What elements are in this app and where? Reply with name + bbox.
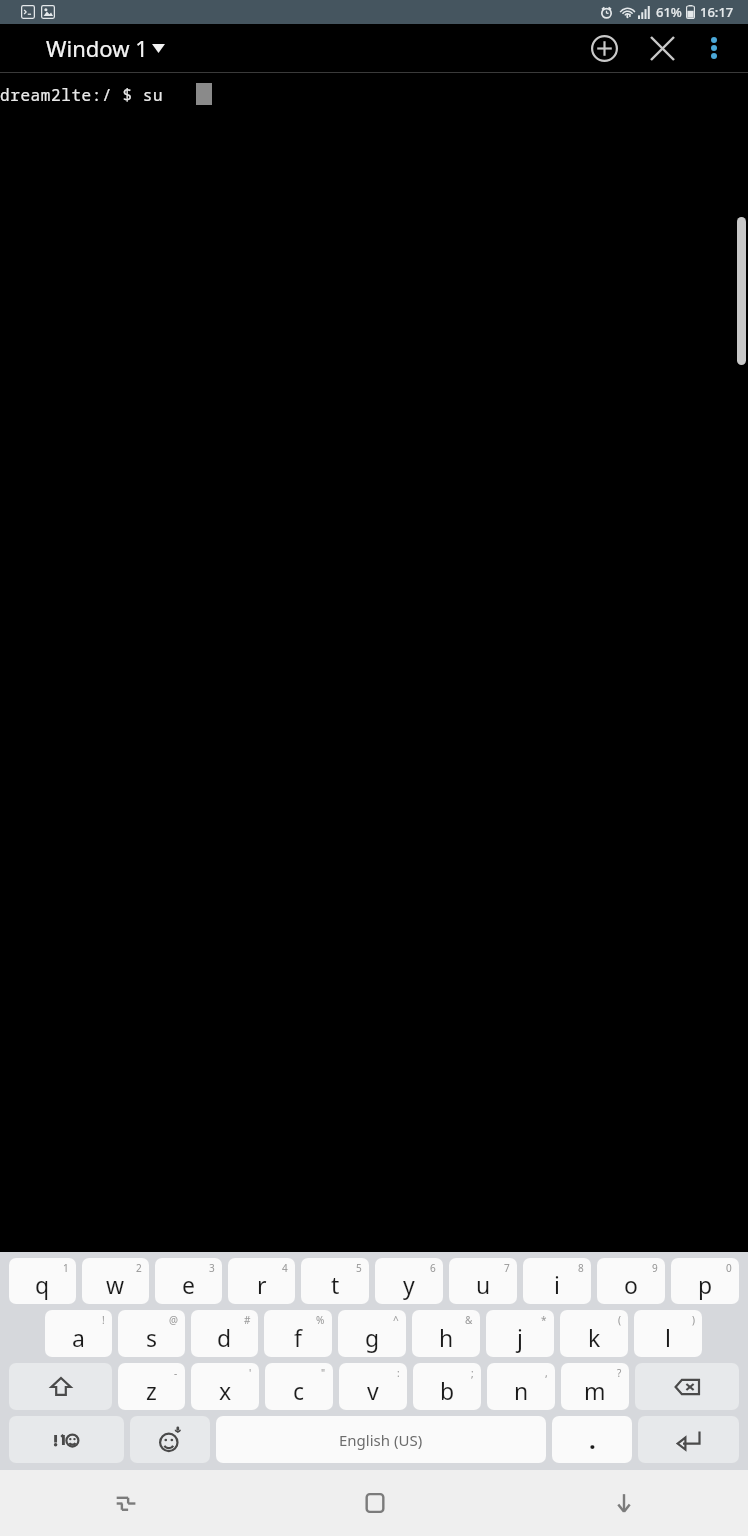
- staticText: ;: [471, 1366, 474, 1380]
- button[interactable]: Hide keyboard: [499, 1470, 748, 1536]
- staticText: ?: [617, 1366, 622, 1380]
- staticText: v: [367, 1375, 379, 1406]
- staticText: z: [146, 1375, 157, 1406]
- button[interactable]: ): [634, 1310, 702, 1357]
- button[interactable]: Window 1: [42, 29, 169, 67]
- staticText: ': [249, 1366, 252, 1380]
- button[interactable]: 9: [597, 1258, 665, 1304]
- staticText: &: [465, 1313, 473, 1327]
- staticText: English (US): [339, 1430, 423, 1450]
- staticText: u: [476, 1269, 491, 1300]
- staticText: t: [331, 1269, 340, 1300]
- staticText: 9: [652, 1261, 658, 1275]
- staticText: 3: [209, 1261, 215, 1275]
- staticText: e: [182, 1269, 195, 1300]
- button[interactable]: %: [264, 1310, 332, 1357]
- staticText: k: [588, 1322, 601, 1353]
- button[interactable]: 0: [671, 1258, 739, 1304]
- staticText: *: [541, 1313, 547, 1327]
- button[interactable]: ,: [487, 1363, 555, 1410]
- staticText: ^: [393, 1313, 399, 1327]
- button[interactable]: 6: [375, 1258, 443, 1304]
- button[interactable]: :: [339, 1363, 407, 1410]
- button[interactable]: Symbols: [9, 1416, 124, 1463]
- staticText: 5: [356, 1261, 362, 1275]
- staticText: 0: [726, 1261, 732, 1275]
- button[interactable]: ?: [561, 1363, 629, 1410]
- button[interactable]: (: [560, 1310, 628, 1357]
- staticText: 6: [430, 1261, 436, 1275]
- staticText: y: [403, 1269, 415, 1300]
- staticText: ,: [545, 1366, 548, 1380]
- staticText: o: [624, 1269, 638, 1300]
- staticText: !: [102, 1313, 105, 1327]
- staticText: s: [146, 1322, 158, 1353]
- button[interactable]: Shift: [9, 1363, 112, 1410]
- staticText: :: [397, 1366, 400, 1380]
- button[interactable]: 5: [301, 1258, 369, 1304]
- staticText: w: [106, 1269, 125, 1300]
- button[interactable]: 3: [155, 1258, 222, 1304]
- button[interactable]: &: [412, 1310, 480, 1357]
- button[interactable]: New window: [580, 24, 628, 72]
- button[interactable]: ": [265, 1363, 333, 1410]
- button[interactable]: -: [118, 1363, 185, 1410]
- staticText: r: [257, 1269, 267, 1300]
- staticText: dream2lte:/ $ su: [0, 84, 164, 106]
- button[interactable]: Recents: [0, 1470, 250, 1536]
- button[interactable]: English (US): [216, 1416, 546, 1463]
- button[interactable]: 8: [523, 1258, 591, 1304]
- staticText: h: [439, 1322, 454, 1353]
- button[interactable]: Backspace: [635, 1363, 739, 1410]
- button[interactable]: 2: [82, 1258, 149, 1304]
- button[interactable]: #: [191, 1310, 258, 1357]
- button[interactable]: 4: [228, 1258, 295, 1304]
- button[interactable]: !: [45, 1310, 112, 1357]
- staticText: f: [294, 1322, 302, 1353]
- button[interactable]: ;: [413, 1363, 481, 1410]
- staticText: 1: [63, 1261, 69, 1275]
- staticText: ): [692, 1313, 695, 1327]
- staticText: -: [174, 1366, 178, 1380]
- staticText: x: [219, 1375, 232, 1406]
- button[interactable]: 1: [9, 1258, 76, 1304]
- button[interactable]: @: [118, 1310, 185, 1357]
- staticText: g: [365, 1322, 380, 1353]
- button[interactable]: Close window: [638, 24, 686, 72]
- staticText: Window 1: [46, 33, 148, 63]
- button[interactable]: Emoji and voice input: [130, 1416, 210, 1463]
- staticText: i: [554, 1269, 560, 1300]
- button[interactable]: ^: [338, 1310, 406, 1357]
- staticText: c: [293, 1375, 305, 1406]
- staticText: ": [321, 1366, 326, 1380]
- staticText: 2: [136, 1261, 142, 1275]
- button[interactable]: Home: [250, 1470, 499, 1536]
- button[interactable]: Enter: [638, 1416, 739, 1463]
- button[interactable]: More options: [692, 26, 736, 70]
- staticText: q: [35, 1269, 50, 1300]
- staticText: m: [584, 1375, 606, 1406]
- staticText: p: [698, 1269, 713, 1300]
- staticText: %: [316, 1313, 325, 1327]
- staticText: 4: [282, 1261, 288, 1275]
- staticText: (: [618, 1313, 621, 1327]
- staticText: 7: [504, 1261, 510, 1275]
- staticText: n: [514, 1375, 529, 1406]
- staticText: @: [169, 1313, 178, 1327]
- button[interactable]: *: [486, 1310, 554, 1357]
- staticText: j: [517, 1322, 523, 1353]
- button[interactable]: 7: [449, 1258, 517, 1304]
- staticText: b: [440, 1375, 455, 1406]
- staticText: .: [589, 1423, 596, 1456]
- button[interactable]: .: [552, 1416, 632, 1463]
- staticText: l: [665, 1322, 671, 1353]
- staticText: a: [72, 1322, 85, 1353]
- staticText: d: [217, 1322, 232, 1353]
- button[interactable]: ': [191, 1363, 259, 1410]
- staticText: 16:17: [700, 3, 734, 21]
- staticText: 61%: [656, 3, 682, 21]
- staticText: #: [244, 1313, 251, 1327]
- staticText: 8: [578, 1261, 584, 1275]
